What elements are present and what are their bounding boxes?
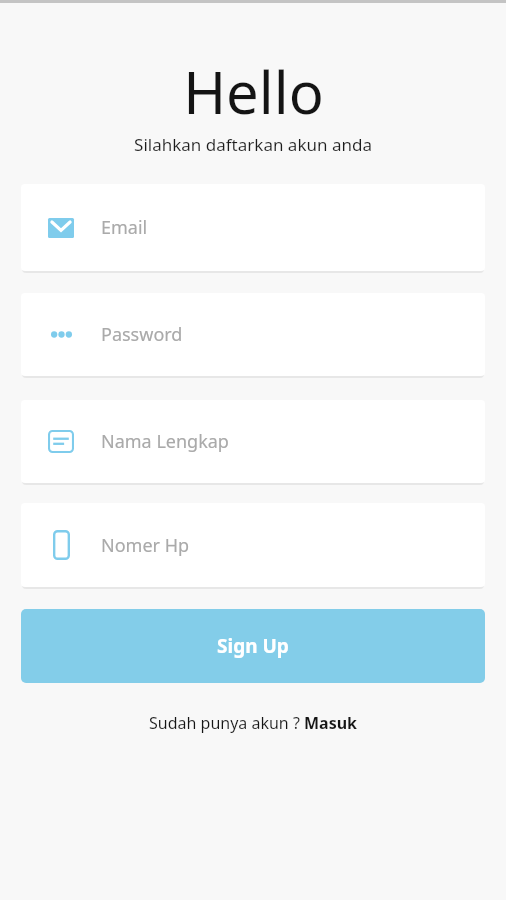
other: Password (51, 331, 72, 338)
button[interactable]: Sign Up (21, 609, 485, 683)
staticText: Nama Lengkap (101, 429, 229, 454)
staticText: Nomer Hp (101, 533, 190, 558)
staticText: Sign Up (217, 633, 289, 659)
staticText: Hello (183, 52, 324, 131)
staticText: Silahkan daftarkan akun anda (134, 133, 372, 156)
other: Full name (48, 430, 74, 453)
staticText: Email (101, 215, 148, 240)
button[interactable]: Password (21, 293, 485, 376)
staticText: Sudah punya akun ? Masuk (149, 712, 358, 734)
button[interactable]: Email (21, 184, 485, 271)
button[interactable]: Phone number (21, 503, 485, 587)
other: Email (48, 218, 74, 238)
other: Phone number (53, 530, 70, 560)
button[interactable]: Full name (21, 400, 485, 483)
button[interactable]: Sudah punya akun ? Masuk (139, 709, 368, 737)
staticText: Password (101, 322, 183, 347)
